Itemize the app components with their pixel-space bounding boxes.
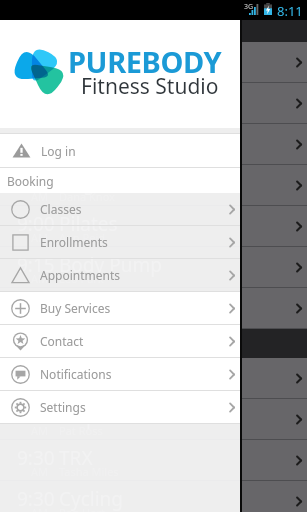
button[interactable]: 9:30: [0, 481, 307, 512]
staticText: Leo Park: [59, 271, 104, 286]
staticText: 8:30: [17, 170, 55, 196]
staticText: 7:00: [17, 88, 55, 114]
staticText: AM: [31, 148, 49, 163]
button[interactable]: Appointments: [0, 259, 240, 291]
button[interactable]: Log in: [0, 134, 240, 167]
button[interactable]: Notifications: [0, 358, 240, 390]
button[interactable]: 9:15: [0, 399, 307, 440]
staticText: Kickboxing: [59, 293, 157, 319]
staticText: Classes: [40, 201, 82, 217]
staticText: May Cole: [59, 312, 107, 327]
staticText: Bug Control: [59, 170, 166, 196]
staticText: AM: [31, 312, 49, 327]
staticText: Buy Services: [40, 300, 111, 316]
staticText: AM: [31, 189, 49, 204]
staticText: Fitness Studio: [81, 72, 219, 101]
staticText: Booking: [7, 173, 54, 189]
staticText: Ivy Chan: [59, 382, 104, 397]
staticText: PUREBODY: [68, 42, 222, 81]
staticText: 6:00: [17, 47, 55, 73]
staticText: 3G: [244, 2, 254, 12]
staticText: 9:15: [17, 293, 55, 319]
staticText: Ann Reid: [59, 230, 106, 245]
button[interactable]: 8:00: [0, 124, 307, 165]
button[interactable]: Settings: [0, 391, 240, 423]
staticText: Settings: [40, 399, 86, 415]
staticText: Dana Knox: [59, 189, 115, 204]
staticText: AM: [31, 382, 49, 397]
button[interactable]: Buy Services: [0, 292, 240, 324]
staticText: AM: [31, 271, 49, 286]
button[interactable]: 9:00: [0, 358, 307, 399]
staticText: 9:00: [17, 211, 55, 237]
staticText: Appointments: [40, 267, 121, 283]
staticText: Mark Tuck: [59, 148, 112, 163]
staticText: AM: [31, 66, 49, 81]
staticText: Pilates: [59, 211, 118, 237]
staticText: Body Pump: [59, 252, 162, 278]
button[interactable]: 6:00: [0, 42, 307, 83]
staticText: Shipwreck Dance: [59, 404, 211, 430]
staticText: 9:00: [17, 363, 55, 389]
staticText: Enrollments: [40, 234, 108, 250]
staticText: Notifications: [40, 366, 112, 382]
staticText: Log in: [41, 143, 76, 159]
staticText: Boot Camp: [59, 47, 159, 73]
button[interactable]: 9:15: [0, 247, 307, 288]
button[interactable]: 9:15: [0, 288, 307, 329]
staticText: Zumba Gold: [59, 363, 169, 389]
staticText: Spin 45: [59, 129, 125, 155]
button[interactable]: 8:30: [0, 165, 307, 206]
staticText: 9:15: [17, 252, 55, 278]
button[interactable]: Enrollments: [0, 226, 240, 258]
staticText: AM: [31, 230, 49, 245]
staticText: Yoga Flow: [59, 88, 149, 114]
button[interactable]: 9:00: [0, 206, 307, 247]
staticText: 8:11: [277, 2, 303, 20]
staticText: 8:00: [17, 129, 55, 155]
staticText: Contact: [40, 333, 84, 349]
button[interactable]: 7:00: [0, 83, 307, 124]
button[interactable]: Classes: [0, 193, 240, 225]
button[interactable]: 9:30: [0, 440, 307, 481]
staticText: Pat Ross: [59, 423, 103, 438]
staticText: 9:15: [17, 404, 55, 430]
button[interactable]: Contact: [0, 325, 240, 357]
staticText: Chris Jones: [59, 66, 117, 81]
staticText: AM: [31, 423, 49, 438]
